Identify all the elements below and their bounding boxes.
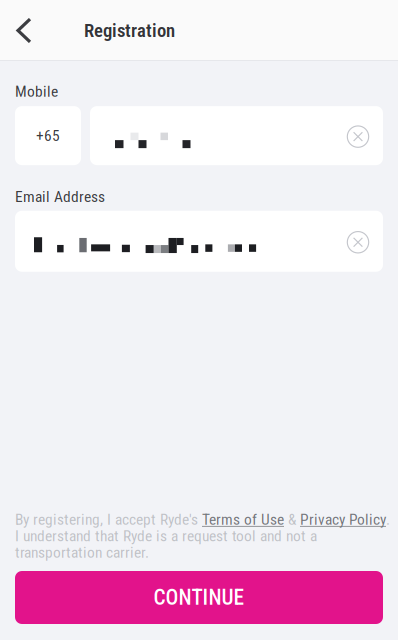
button[interactable]: Clear mobile number bbox=[347, 125, 369, 147]
button[interactable]: Back bbox=[2, 8, 46, 52]
staticText: Privacy Policy bbox=[300, 510, 386, 528]
staticText: Email Address bbox=[15, 188, 105, 206]
button[interactable]: Clear email address bbox=[347, 230, 369, 252]
staticText: Mobile bbox=[15, 82, 58, 101]
button[interactable]: Privacy Policy bbox=[300, 510, 386, 528]
staticText: . bbox=[386, 510, 390, 528]
staticText: +65 bbox=[36, 127, 60, 145]
staticText: transportation carrier. bbox=[15, 543, 149, 561]
staticText: By registering, I accept Ryde's bbox=[15, 510, 202, 528]
staticText: I understand that Ryde is a request tool… bbox=[15, 527, 317, 545]
button[interactable]: Terms of Use bbox=[202, 510, 284, 528]
staticText: & bbox=[284, 510, 300, 528]
staticText: CONTINUE bbox=[153, 585, 244, 610]
staticText: Registration bbox=[84, 20, 175, 41]
button[interactable]: CONTINUE bbox=[15, 571, 383, 624]
staticText: Terms of Use bbox=[202, 510, 284, 528]
